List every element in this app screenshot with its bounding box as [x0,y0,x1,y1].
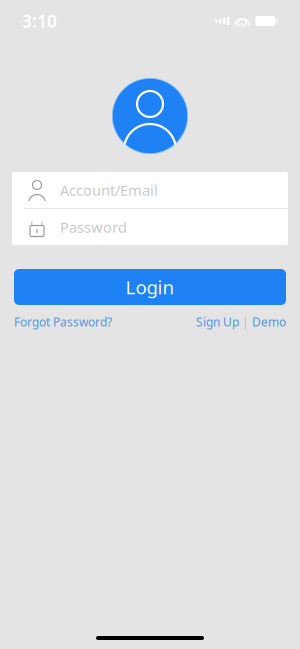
button[interactable]: Password [12,209,288,245]
staticText: Account/Email [60,180,158,200]
staticText: Password [60,217,127,237]
button[interactable]: Account/Email [12,172,288,208]
staticText: | [239,314,252,330]
staticText: Forgot Password? [14,314,112,330]
staticText: Login [125,275,174,299]
staticText: 3:10 [22,9,57,32]
button[interactable]: Forgot Password? [14,314,112,330]
button[interactable]: Demo [252,314,286,330]
button[interactable]: Sign Up [196,314,239,330]
button[interactable]: Login [14,269,286,305]
staticText: Demo [252,314,286,330]
staticText: Sign Up [196,314,239,330]
